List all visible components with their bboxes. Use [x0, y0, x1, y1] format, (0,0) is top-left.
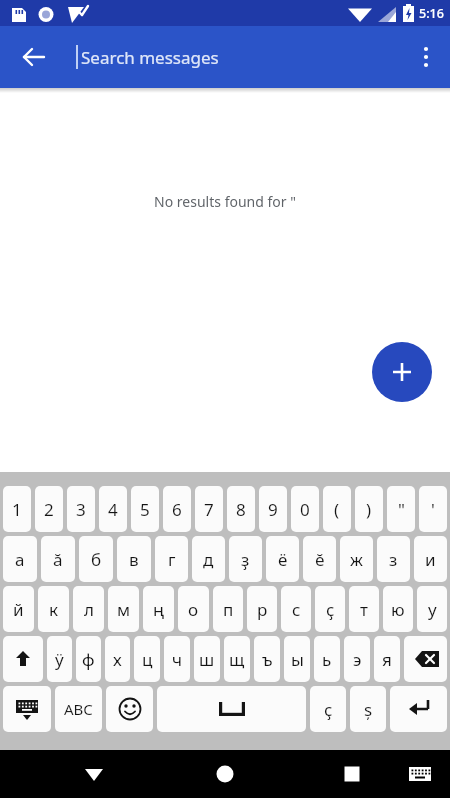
button[interactable]: 9 [259, 486, 287, 532]
staticText: л [84, 598, 94, 621]
button[interactable]: л [73, 586, 104, 632]
button[interactable]: б [79, 536, 113, 582]
button[interactable]: New message [372, 342, 432, 402]
staticText: " [398, 498, 405, 521]
staticText: п [223, 598, 234, 621]
button[interactable]: ĕ [303, 536, 336, 582]
button[interactable]: ч [164, 636, 190, 682]
button[interactable]: й [3, 586, 34, 632]
staticText: ÿ [55, 648, 64, 671]
staticText: ч [172, 648, 183, 671]
staticText: ы [291, 648, 304, 671]
staticText: к [49, 598, 59, 621]
button[interactable]: ь [314, 636, 340, 682]
staticText: 9 [268, 498, 278, 521]
staticText: х [113, 648, 122, 671]
button[interactable]: ц [134, 636, 160, 682]
staticText: э [353, 648, 362, 671]
staticText: д [203, 548, 214, 571]
button[interactable]: Space [157, 686, 306, 732]
button[interactable]: р [247, 586, 277, 632]
staticText: м [117, 598, 131, 621]
button[interactable]: ҫ [315, 586, 345, 632]
button[interactable]: д [192, 536, 225, 582]
staticText: ' [431, 498, 435, 521]
button[interactable]: ă [41, 536, 75, 582]
button[interactable]: а [3, 536, 37, 582]
button[interactable]: з [377, 536, 410, 582]
staticText: ĕ [315, 548, 325, 571]
staticText: ҫ [324, 698, 333, 721]
button[interactable]: ( [323, 486, 351, 532]
button[interactable]: 4 [99, 486, 127, 532]
button[interactable]: э [344, 636, 370, 682]
button[interactable]: 5 [131, 486, 159, 532]
button[interactable]: ABC [55, 686, 102, 732]
staticText: ж [350, 548, 363, 571]
button[interactable]: т [349, 586, 379, 632]
staticText: ь [322, 648, 332, 671]
button[interactable]: Search messages [76, 45, 219, 69]
button[interactable]: ң [143, 586, 174, 632]
staticText: 1 [12, 498, 22, 521]
button[interactable]: п [213, 586, 243, 632]
button[interactable]: ÿ [47, 636, 72, 682]
button[interactable]: ф [76, 636, 101, 682]
staticText: о [188, 598, 199, 621]
button[interactable]: 3 [67, 486, 95, 532]
button[interactable]: Switch keyboard [3, 686, 51, 732]
staticText: Search messages [81, 46, 219, 69]
button[interactable]: " [387, 486, 415, 532]
button[interactable]: с [281, 586, 311, 632]
staticText: ) [366, 498, 372, 521]
button[interactable]: ҙ [229, 536, 262, 582]
button[interactable]: м [108, 586, 139, 632]
staticText: ҙ [241, 548, 250, 571]
button[interactable]: и [414, 536, 447, 582]
button[interactable]: Back [72, 752, 116, 796]
button[interactable]: Switch keyboard [398, 752, 442, 796]
button[interactable]: г [155, 536, 188, 582]
button[interactable]: Emoji [106, 686, 153, 732]
button[interactable]: у [417, 586, 447, 632]
button[interactable]: к [38, 586, 69, 632]
staticText: ю [391, 598, 405, 621]
button[interactable]: 6 [163, 486, 191, 532]
button[interactable] [3, 636, 43, 682]
button[interactable]: 0 [291, 486, 319, 532]
button[interactable]: о [178, 586, 209, 632]
button[interactable]: Back [10, 33, 58, 81]
staticText: я [382, 648, 392, 671]
button[interactable]: х [105, 636, 130, 682]
staticText: з [389, 548, 398, 571]
button[interactable]: Home [203, 752, 247, 796]
button[interactable]: в [117, 536, 151, 582]
button[interactable]: ș [350, 686, 386, 732]
button[interactable]: 8 [227, 486, 255, 532]
button[interactable]: ю [383, 586, 413, 632]
staticText: т [360, 598, 368, 621]
staticText: 3 [76, 498, 86, 521]
staticText: 5 [140, 498, 150, 521]
staticText: ф [82, 648, 95, 671]
staticText: 5:16 [419, 5, 444, 22]
button[interactable]: ы [284, 636, 310, 682]
button[interactable]: ш [194, 636, 220, 682]
button[interactable]: ж [340, 536, 373, 582]
button[interactable]: Enter [390, 686, 447, 732]
staticText: щ [229, 648, 245, 671]
button[interactable]: ) [355, 486, 383, 532]
button[interactable]: я [374, 636, 400, 682]
button[interactable]: ъ [254, 636, 280, 682]
button[interactable]: More options [402, 33, 450, 81]
button[interactable]: ҫ [310, 686, 346, 732]
button[interactable]: ё [266, 536, 299, 582]
staticText: 4 [108, 498, 118, 521]
button[interactable] [404, 636, 447, 682]
button[interactable]: 1 [3, 486, 31, 532]
button[interactable]: 7 [195, 486, 223, 532]
button[interactable]: Recents [330, 752, 374, 796]
button[interactable]: 2 [35, 486, 63, 532]
button[interactable]: щ [224, 636, 250, 682]
button[interactable]: ' [419, 486, 447, 532]
